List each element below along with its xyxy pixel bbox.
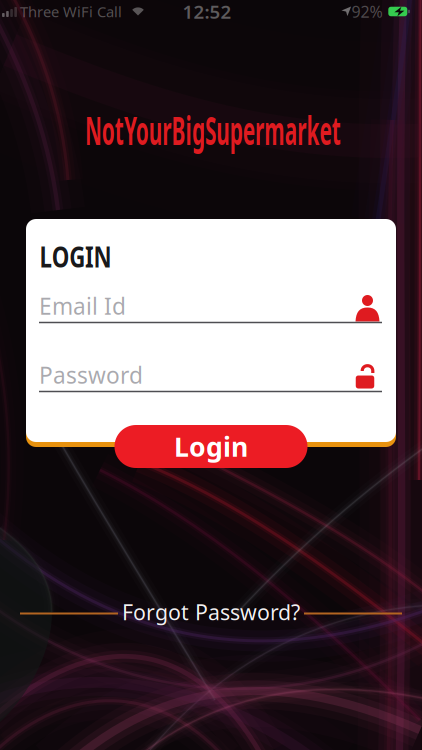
staticText: NotYourBigSupermarket [0, 104, 422, 156]
button[interactable]: Login [114, 425, 307, 468]
staticText: LOGIN [39, 236, 134, 275]
staticText: Forgot Password? [122, 598, 300, 626]
staticText: Login [174, 429, 248, 464]
button[interactable]: Email Id [39, 287, 382, 324]
button[interactable]: Forgot Password? [122, 598, 300, 626]
staticText: Three WiFi Call [20, 2, 122, 21]
staticText: Password [39, 360, 143, 390]
button[interactable]: Password [39, 356, 382, 393]
staticText: 12:52 [182, 0, 231, 24]
staticText: 92% [351, 1, 382, 22]
staticText: Email Id [39, 291, 126, 321]
